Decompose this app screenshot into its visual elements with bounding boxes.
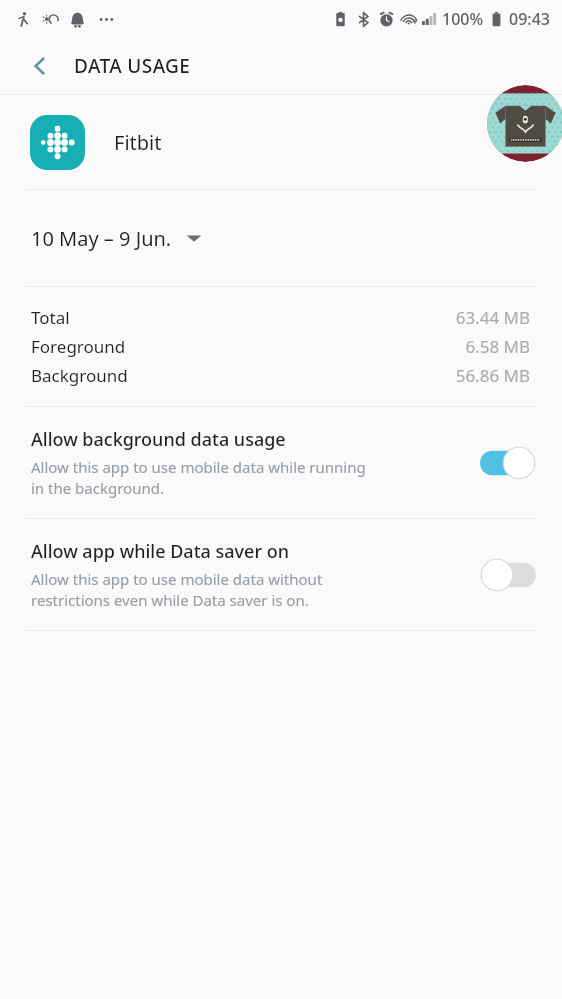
staticText: Foreground bbox=[31, 335, 126, 358]
staticText: Allow this app to use mobile data withou… bbox=[31, 569, 323, 611]
button[interactable]: Fitbit bbox=[0, 95, 562, 189]
staticText: 100% bbox=[442, 8, 484, 30]
button[interactable]: On bbox=[480, 446, 536, 480]
staticText: Background bbox=[31, 364, 128, 387]
staticText: 56.86 MB bbox=[455, 364, 530, 387]
button[interactable]: Profile bbox=[487, 85, 562, 162]
staticText: Total bbox=[31, 306, 70, 329]
staticText: Allow background data usage bbox=[31, 427, 286, 452]
button[interactable]: Allow app while Data saver on bbox=[0, 519, 562, 630]
staticText: Allow app while Data saver on bbox=[31, 539, 289, 564]
staticText: 63.44 MB bbox=[455, 306, 530, 329]
button[interactable]: 10 May – 9 Jun. bbox=[0, 190, 562, 286]
staticText: Fitbit bbox=[114, 129, 162, 156]
staticText: 6.58 MB bbox=[465, 335, 530, 358]
button[interactable]: Back bbox=[18, 44, 62, 88]
button[interactable]: Allow background data usage bbox=[0, 407, 562, 518]
button[interactable]: Off bbox=[480, 558, 536, 592]
staticText: 09:43 bbox=[509, 8, 550, 30]
staticText: DATA USAGE bbox=[74, 53, 191, 79]
staticText: 10 May – 9 Jun. bbox=[31, 225, 172, 252]
staticText: Allow this app to use mobile data while … bbox=[31, 457, 366, 499]
